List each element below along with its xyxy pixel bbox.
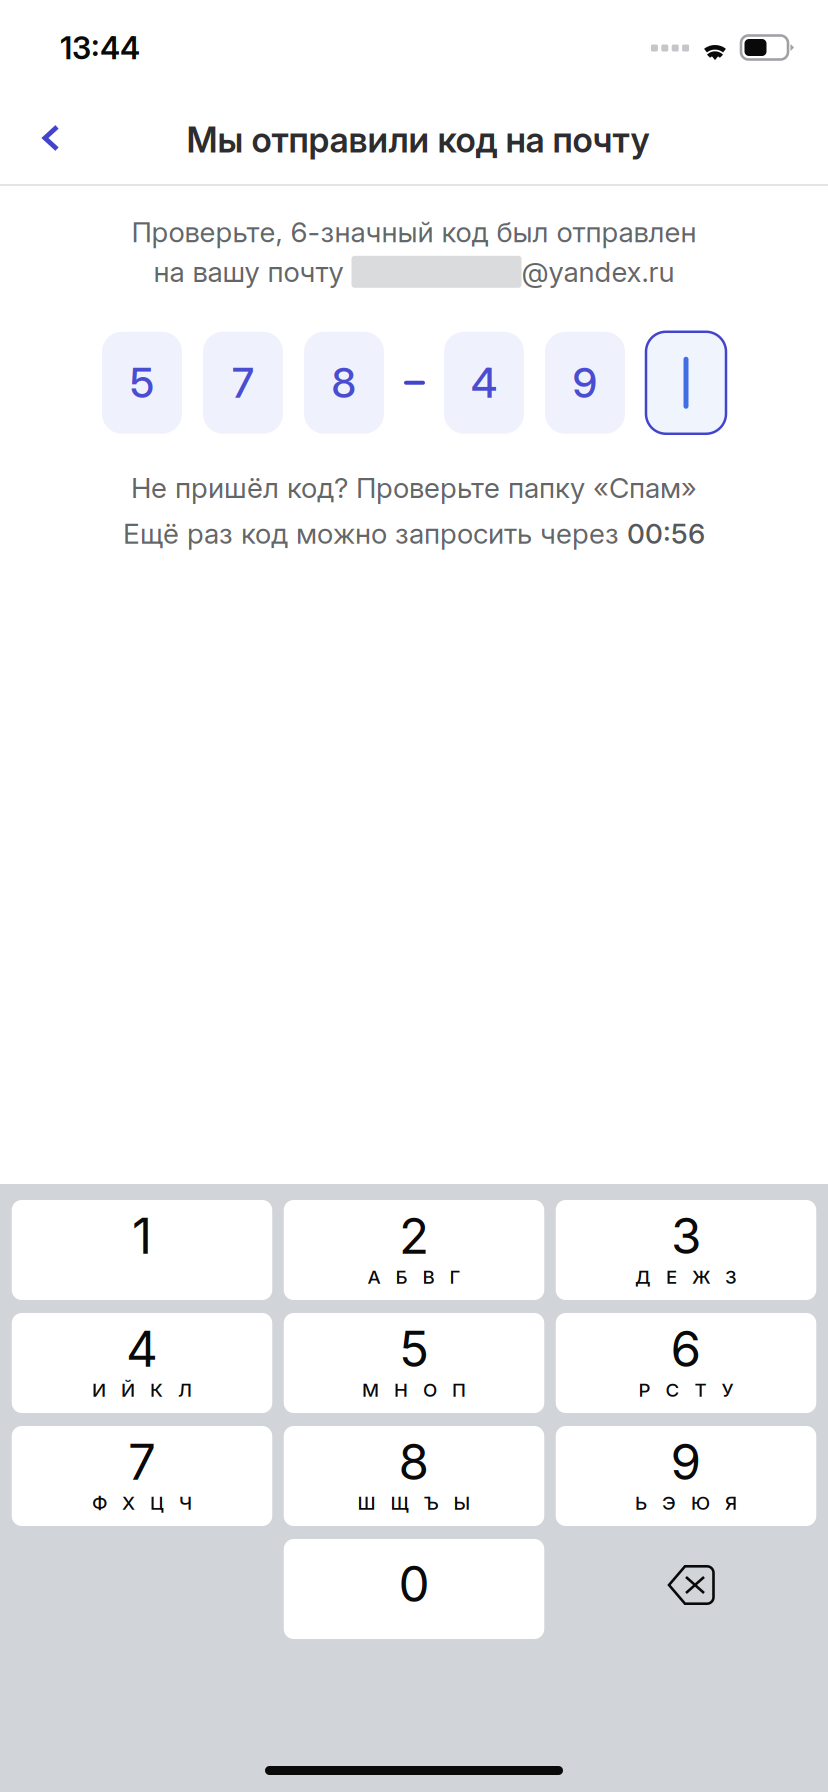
staticText: МНОП xyxy=(362,1379,466,1401)
button[interactable]: 3 xyxy=(556,1200,816,1300)
button[interactable]: 4 xyxy=(12,1313,272,1413)
staticText: 00:56 xyxy=(627,517,705,550)
staticText: ДЕЖЗ xyxy=(635,1266,737,1288)
button[interactable]: Назад xyxy=(10,103,86,177)
staticText: @yandex.ru xyxy=(521,255,674,289)
staticText: АБВГ xyxy=(367,1266,460,1288)
button[interactable]: 2 xyxy=(284,1200,544,1300)
staticText: 7 xyxy=(128,1432,156,1492)
staticText: ФХЦЧ xyxy=(92,1492,192,1514)
staticText: 7 xyxy=(232,358,254,408)
staticText: ЬЭЮЯ xyxy=(635,1492,737,1514)
staticText: 9 xyxy=(670,1432,701,1492)
staticText: 13:44 xyxy=(60,29,140,66)
button[interactable]: 1 xyxy=(12,1200,272,1300)
staticText: 4 xyxy=(471,358,497,408)
staticText: 5 xyxy=(130,358,154,408)
button[interactable]: 0 xyxy=(284,1539,544,1639)
staticText: 3 xyxy=(671,1206,701,1266)
staticText: 8 xyxy=(398,1432,429,1492)
staticText: 2 xyxy=(399,1206,429,1266)
button[interactable]: 6 xyxy=(556,1313,816,1413)
staticText: ИЙКЛ xyxy=(92,1379,192,1401)
staticText: 1 xyxy=(132,1206,152,1266)
staticText: 9 xyxy=(572,358,597,408)
staticText: 5 xyxy=(399,1319,429,1379)
staticText: 4 xyxy=(126,1319,158,1379)
staticText: 6 xyxy=(670,1319,701,1379)
staticText: Мы отправили код на почту xyxy=(186,119,649,161)
staticText: РСТУ xyxy=(638,1379,733,1401)
staticText: 8 xyxy=(331,358,356,408)
staticText: Не пришёл код? Проверьте папку «Спам» xyxy=(131,471,697,505)
staticText: 0 xyxy=(398,1554,429,1614)
staticText: Ещё раз код можно запросить через xyxy=(123,517,627,550)
button[interactable]: 9 xyxy=(556,1426,816,1526)
button[interactable]: 8 xyxy=(284,1426,544,1526)
staticText: на вашу почту xyxy=(153,255,351,289)
button[interactable]: Удалить xyxy=(556,1539,816,1639)
staticText: ШЩЪЫ xyxy=(357,1492,470,1514)
staticText: Проверьте, 6-значный код был отправлен xyxy=(131,215,696,249)
button[interactable]: 5 xyxy=(284,1313,544,1413)
button[interactable]: 7 xyxy=(12,1426,272,1526)
